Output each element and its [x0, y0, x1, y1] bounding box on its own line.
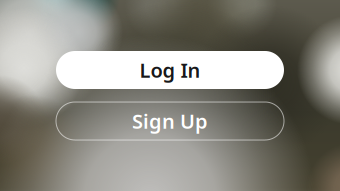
staticText: Sign Up	[132, 108, 208, 134]
staticText: Log In	[139, 57, 200, 83]
button[interactable]: Log In	[56, 51, 284, 89]
button[interactable]: Sign Up	[56, 102, 284, 140]
